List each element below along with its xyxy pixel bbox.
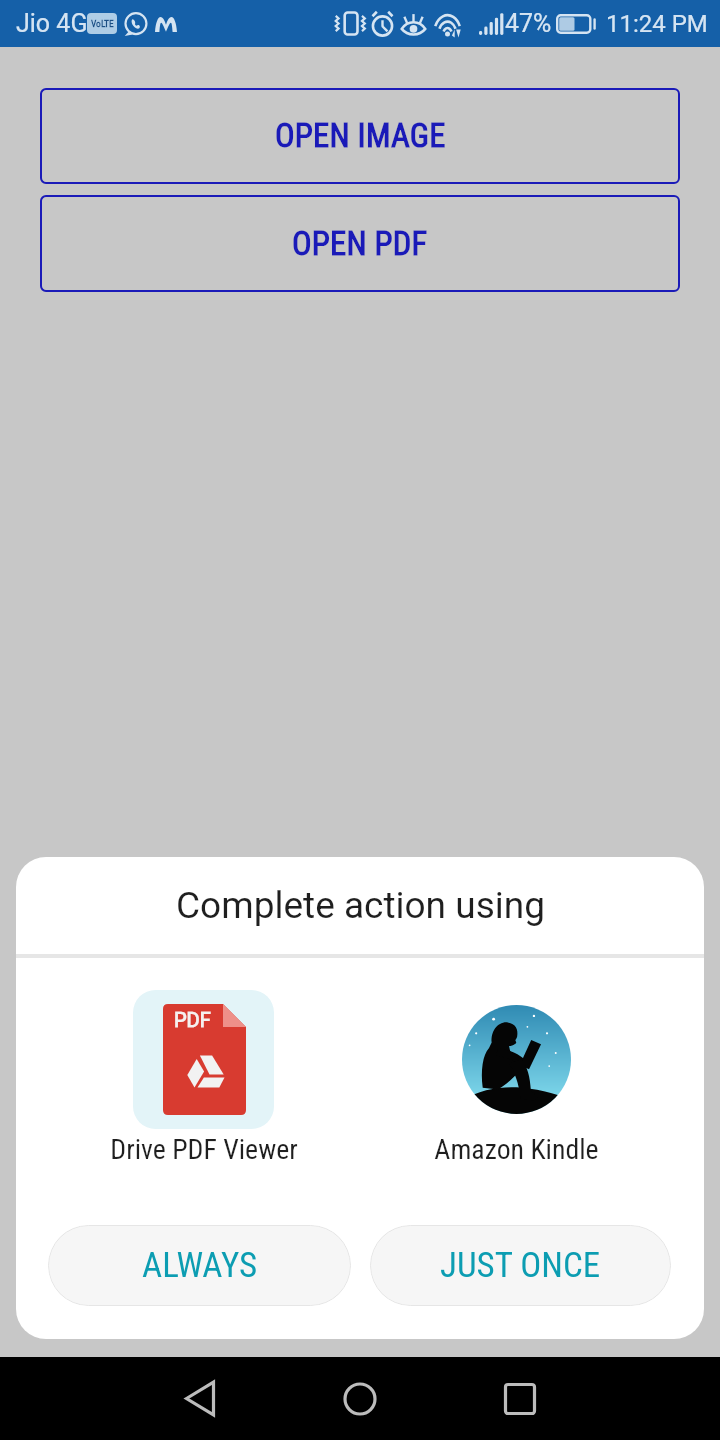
- staticText: Amazon Kindle: [434, 1133, 599, 1166]
- staticText: VoLTE: [91, 18, 114, 29]
- staticText: OPEN IMAGE: [275, 117, 446, 155]
- staticText: Complete action using: [176, 884, 545, 927]
- staticText: PDF: [174, 1008, 211, 1031]
- button[interactable]: OPEN IMAGE: [40, 88, 680, 184]
- button[interactable]: JUST ONCE: [370, 1225, 671, 1306]
- staticText: JUST ONCE: [440, 1245, 601, 1286]
- staticText: ALWAYS: [142, 1245, 258, 1286]
- staticText: 11:24 PM: [606, 10, 708, 38]
- button[interactable]: PDF: [63, 990, 344, 1166]
- staticText: OPEN PDF: [292, 225, 428, 263]
- button[interactable]: ALWAYS: [48, 1225, 351, 1306]
- button[interactable]: Home: [300, 1357, 420, 1440]
- button[interactable]: Back: [140, 1357, 260, 1440]
- staticText: Drive PDF Viewer: [110, 1133, 298, 1166]
- button[interactable]: Amazon Kindle: [376, 990, 657, 1166]
- button[interactable]: OPEN PDF: [40, 195, 680, 292]
- staticText: Jio 4G: [16, 9, 88, 38]
- button[interactable]: Recent apps: [460, 1357, 580, 1440]
- staticText: 47%: [505, 9, 552, 38]
